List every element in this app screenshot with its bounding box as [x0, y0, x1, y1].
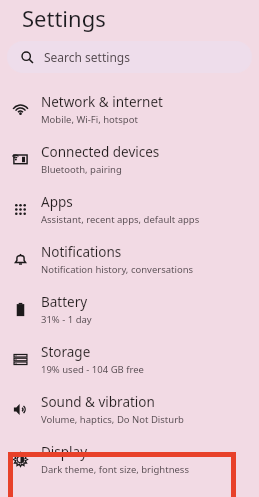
- staticText: Apps: [41, 193, 73, 211]
- button[interactable]: Notifications: [0, 234, 259, 284]
- staticText: Mobile, Wi-Fi, hotspot: [41, 113, 138, 126]
- staticText: Settings: [22, 3, 106, 33]
- staticText: Storage: [41, 343, 91, 361]
- button[interactable]: Display: [0, 434, 259, 484]
- button[interactable]: Battery: [0, 284, 259, 334]
- staticText: Battery: [41, 293, 88, 311]
- staticText: Network & internet: [41, 93, 163, 111]
- staticText: 31% - 1 day: [41, 313, 92, 326]
- button[interactable]: Connected devices: [0, 134, 259, 184]
- staticText: Volume, haptics, Do Not Disturb: [41, 413, 184, 426]
- button[interactable]: Apps: [0, 184, 259, 234]
- staticText: Dark theme, font size, brightness: [41, 463, 189, 476]
- button[interactable]: Network & internet: [0, 84, 259, 134]
- button[interactable]: Search settings: [7, 41, 252, 73]
- staticText: Connected devices: [41, 143, 160, 161]
- button[interactable]: Storage: [0, 334, 259, 384]
- staticText: Search settings: [44, 49, 130, 65]
- staticText: Assistant, recent apps, default apps: [41, 213, 200, 226]
- staticText: 19% used - 104 GB free: [41, 363, 144, 376]
- button[interactable]: Sound & vibration: [0, 384, 259, 434]
- staticText: Display: [41, 443, 88, 461]
- staticText: Sound & vibration: [41, 393, 155, 411]
- staticText: Notification history, conversations: [41, 263, 194, 276]
- staticText: Notifications: [41, 243, 122, 261]
- staticText: Bluetooth, pairing: [41, 163, 122, 176]
